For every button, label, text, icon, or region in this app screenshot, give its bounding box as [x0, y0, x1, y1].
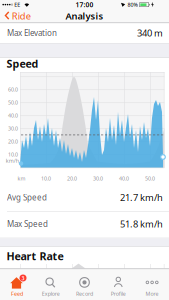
- staticText: 51.8 km/h: [120, 218, 163, 230]
- staticText: 10.0: [8, 151, 18, 158]
- staticText: 80%: [127, 1, 137, 8]
- staticText: Record: [76, 290, 93, 297]
- staticText: Profile: [111, 290, 126, 297]
- staticText: 10.0: [41, 175, 51, 182]
- staticText: 40.0: [119, 175, 129, 182]
- staticText: 21.7 km/h: [120, 191, 163, 204]
- staticText: km: [17, 175, 25, 182]
- button[interactable]: Ride: [3, 9, 31, 22]
- staticText: 50.0: [145, 175, 155, 182]
- staticText: 40.0: [8, 112, 18, 119]
- staticText: More: [146, 290, 159, 297]
- button[interactable]: Record: [68, 269, 101, 300]
- staticText: EE: [14, 1, 20, 8]
- staticText: 20.0: [67, 175, 77, 182]
- staticText: km/h: [6, 157, 19, 164]
- button[interactable]: Explore: [34, 269, 68, 300]
- staticText: 340 m: [137, 27, 163, 39]
- staticText: 60.0: [8, 86, 18, 93]
- staticText: Explore: [42, 290, 60, 297]
- button[interactable]: Profile: [101, 269, 135, 300]
- staticText: Speed: [6, 56, 38, 71]
- staticText: 30.0: [8, 125, 18, 132]
- staticText: Analysis: [65, 10, 103, 22]
- staticText: Max Speed: [7, 219, 48, 229]
- staticText: Heart Rate: [6, 249, 63, 263]
- button[interactable]: 3: [0, 269, 34, 300]
- staticText: Feed: [11, 290, 23, 297]
- staticText: 30.0: [93, 175, 103, 182]
- staticText: Avg Speed: [7, 192, 47, 203]
- staticText: Max Elevation: [7, 28, 57, 38]
- staticText: 17:00: [75, 0, 93, 9]
- staticText: Ride: [12, 10, 31, 22]
- staticText: 50.0: [8, 99, 18, 106]
- button[interactable]: More: [135, 269, 169, 300]
- staticText: 3: [21, 275, 24, 282]
- staticText: 20.0: [8, 138, 18, 145]
